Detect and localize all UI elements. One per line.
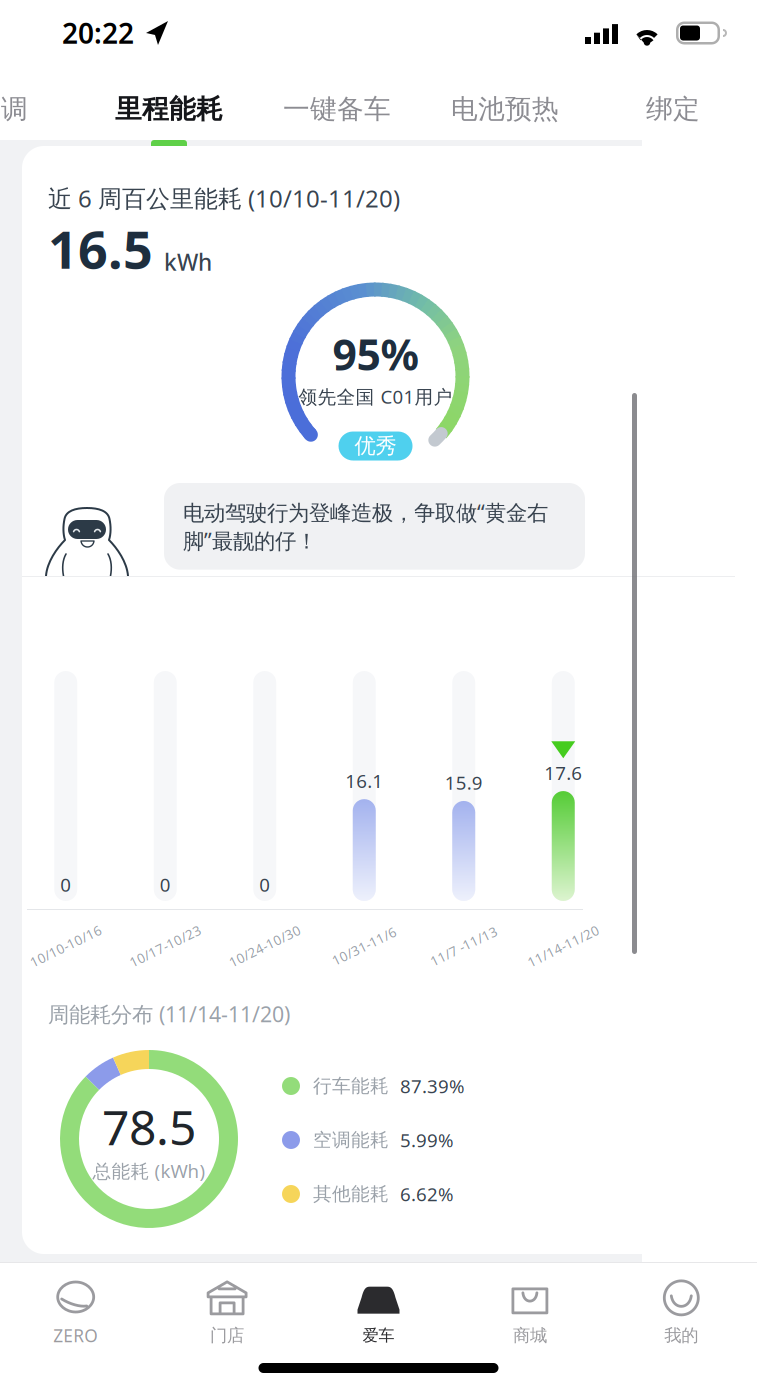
staticText: 20:22 bbox=[62, 14, 134, 52]
staticText: 10/24-10/30 bbox=[226, 937, 304, 955]
staticText: 16.5 bbox=[48, 214, 153, 283]
staticText: 空调 bbox=[0, 93, 28, 125]
staticText: 0 bbox=[60, 872, 71, 897]
button[interactable]: 里程能耗 bbox=[85, 78, 253, 140]
staticText: 空调能耗 bbox=[313, 1128, 389, 1151]
staticText: 一键备车 bbox=[283, 93, 391, 125]
staticText: 10/10-10/16 bbox=[27, 937, 105, 955]
staticText: 17.6 bbox=[544, 760, 582, 785]
button[interactable]: 绑定 bbox=[589, 78, 757, 140]
staticText: 领先全国 C01用户 bbox=[298, 384, 452, 409]
staticText: 其他能耗 bbox=[313, 1182, 389, 1205]
staticText: 电池预热 bbox=[451, 93, 559, 125]
staticText: 绑定 bbox=[646, 93, 700, 125]
button[interactable]: 爱车 bbox=[303, 1265, 454, 1345]
staticText: 爱车 bbox=[362, 1326, 394, 1345]
button[interactable]: ZERO bbox=[0, 1263, 151, 1347]
button[interactable]: 一键备车 bbox=[253, 78, 421, 140]
staticText: 里程能耗 bbox=[115, 93, 223, 125]
staticText: 周能耗分布 (11/14-11/20) bbox=[48, 1000, 290, 1028]
staticText: 11/7 -11/13 bbox=[427, 937, 500, 955]
button[interactable]: 我的 bbox=[606, 1264, 757, 1346]
staticText: 门店 bbox=[210, 1325, 244, 1346]
staticText: 11/14-11/20 bbox=[524, 937, 602, 955]
staticText: 6.62% bbox=[400, 1182, 454, 1206]
staticText: 16.1 bbox=[345, 768, 383, 793]
staticText: 总能耗 (kWh) bbox=[92, 1158, 205, 1183]
button[interactable]: 商城 bbox=[454, 1264, 606, 1346]
staticText: 行车能耗 bbox=[313, 1074, 389, 1097]
staticText: 我的 bbox=[664, 1325, 698, 1346]
staticText: 10/31-11/6 bbox=[329, 937, 399, 955]
staticText: 0 bbox=[259, 872, 270, 897]
staticText: 优秀 bbox=[354, 433, 396, 459]
staticText: 电动驾驶行为登峰造极，争取做“黄金右脚”最靓的仔！ bbox=[183, 498, 548, 555]
staticText: 78.5 bbox=[102, 1095, 196, 1158]
staticText: ZERO bbox=[53, 1324, 98, 1347]
button[interactable]: 空调 bbox=[0, 78, 85, 140]
staticText: 15.9 bbox=[445, 770, 483, 795]
staticText: kWh bbox=[164, 247, 212, 277]
staticText: 10/17-10/23 bbox=[126, 937, 204, 955]
staticText: 商城 bbox=[513, 1325, 547, 1346]
button[interactable]: 电池预热 bbox=[421, 78, 589, 140]
staticText: 87.39% bbox=[400, 1074, 465, 1098]
staticText: 0 bbox=[160, 872, 171, 897]
staticText: 5.99% bbox=[400, 1128, 454, 1152]
staticText: 近 6 周百公里能耗 (10/10-11/20) bbox=[48, 182, 400, 214]
staticText: 95% bbox=[332, 325, 418, 382]
button[interactable]: 门店 bbox=[151, 1264, 303, 1346]
